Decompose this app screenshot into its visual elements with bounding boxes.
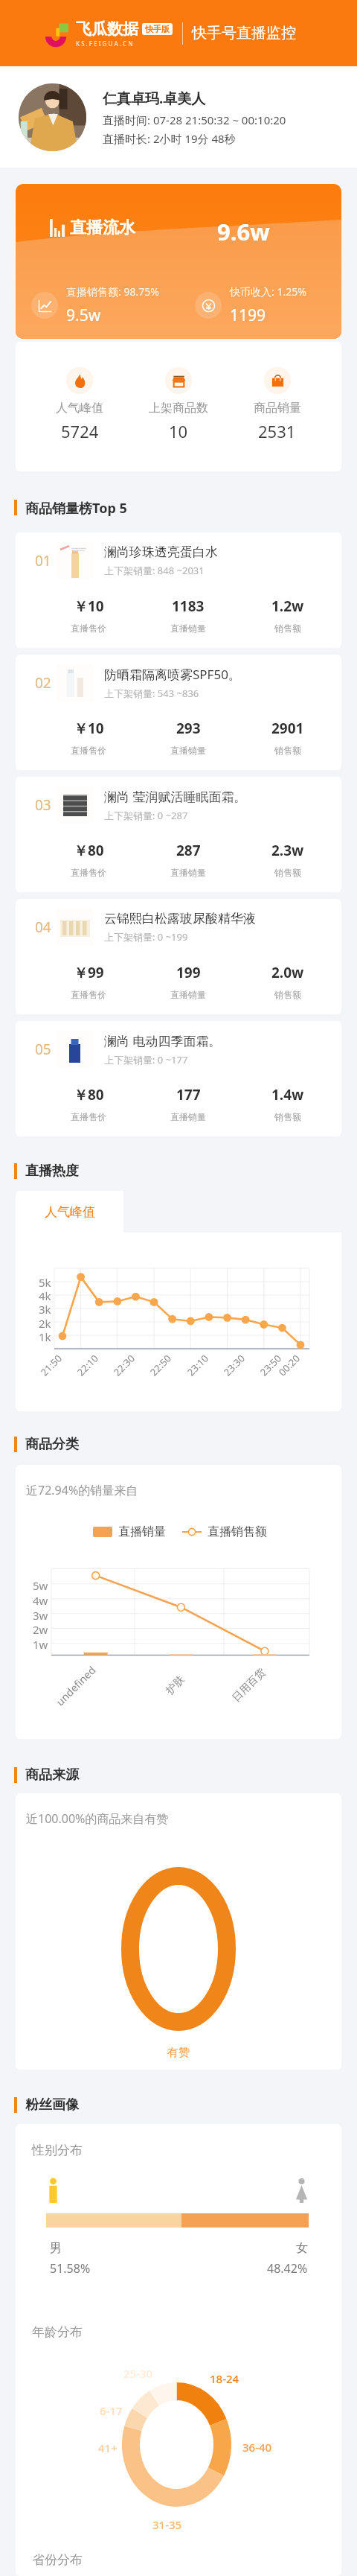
staticText: 直播售价 xyxy=(71,745,106,756)
staticText: 1183 xyxy=(172,597,205,616)
staticText: 3w xyxy=(33,1608,48,1623)
staticText: 177 xyxy=(176,1085,201,1104)
staticText: ￥80 xyxy=(74,1085,104,1104)
staticText: 05 xyxy=(35,1040,51,1059)
staticText: 5w xyxy=(33,1578,48,1593)
staticText: 1199 xyxy=(230,305,266,326)
staticText: undefined xyxy=(53,1663,99,1709)
staticText: 直播流水 xyxy=(70,217,135,238)
staticText: 直播销量 xyxy=(170,623,206,634)
staticText: K S . F E I G U A . C N xyxy=(76,39,133,48)
staticText: 22:30 xyxy=(111,1351,138,1379)
staticText: 36-40 xyxy=(242,2440,272,2455)
staticText: 上下架销量: 0 ~177 xyxy=(104,1053,188,1066)
staticText: 人气峰值 xyxy=(45,1204,95,1220)
staticText: 商品销量 xyxy=(254,401,301,416)
staticText: 性别分布 xyxy=(32,2143,83,2158)
staticText: 5k xyxy=(39,1275,51,1290)
staticText: 199 xyxy=(176,963,201,982)
staticText: 04 xyxy=(35,917,51,937)
staticText: 25-30 xyxy=(123,2366,153,2381)
staticText: ￥80 xyxy=(74,841,104,860)
staticText: 商品分类 xyxy=(25,1436,79,1453)
staticText: 粉丝画像 xyxy=(25,2096,79,2114)
staticText: 10 xyxy=(169,420,188,442)
staticText: 3k xyxy=(39,1302,51,1317)
staticText: 287 xyxy=(176,841,201,860)
staticText: 直播销量 xyxy=(118,1524,166,1539)
staticText: 02 xyxy=(35,673,51,693)
button[interactable]: 02 xyxy=(16,655,341,770)
staticText: 2901 xyxy=(271,719,304,738)
staticText: 商品销量榜Top 5 xyxy=(25,499,127,516)
staticText: 直播时间: 07-28 21:50:32 ~ 00:10:20 xyxy=(103,112,286,127)
staticText: 年龄分布 xyxy=(32,2324,83,2340)
button[interactable]: 05 xyxy=(16,1021,341,1136)
staticText: 销售额 xyxy=(274,989,301,1000)
staticText: 销售额 xyxy=(274,1111,301,1122)
staticText: 51.58% xyxy=(50,2260,91,2277)
staticText: 飞瓜数据 xyxy=(76,19,138,39)
staticText: 4k xyxy=(39,1288,51,1303)
staticText: 1.2w xyxy=(271,597,304,616)
staticText: 41+ xyxy=(98,2440,118,2455)
staticText: 上下架销量: 0 ~199 xyxy=(104,930,188,944)
staticText: 男 xyxy=(50,2241,62,2256)
staticText: 1w xyxy=(33,1637,48,1652)
staticText: 销售额 xyxy=(274,745,301,756)
staticText: 18-24 xyxy=(210,2371,239,2386)
staticText: 直播销量 xyxy=(170,989,206,1000)
button[interactable]: 人气峰值 xyxy=(16,1191,123,1233)
staticText: 2k xyxy=(39,1316,51,1331)
staticText: 48.42% xyxy=(267,2260,308,2277)
staticText: 03 xyxy=(35,795,51,815)
staticText: 直播售价 xyxy=(71,1111,106,1122)
staticText: 上下架销量: 848 ~2031 xyxy=(104,564,205,577)
staticText: 澜尚珍珠透亮蛋白水 xyxy=(104,544,218,560)
staticText: 22:50 xyxy=(147,1351,174,1379)
staticText: 直播销量 xyxy=(170,1111,206,1122)
staticText: 直播销量 xyxy=(170,745,206,756)
staticText: ￥10 xyxy=(74,719,104,738)
staticText: 云锦熙白松露玻尿酸精华液 xyxy=(104,911,256,926)
staticText: 销售额 xyxy=(274,623,301,634)
staticText: 1k xyxy=(39,1329,51,1344)
staticText: 直播售价 xyxy=(71,989,106,1000)
staticText: 直播销售额: 98.75% xyxy=(66,284,159,299)
staticText: 2.3w xyxy=(271,841,304,860)
staticText: 1.4w xyxy=(271,1085,304,1104)
staticText: 上下架销量: 0 ~287 xyxy=(104,809,188,822)
staticText: 仁真卓玛.卓美人 xyxy=(103,89,206,108)
staticText: ￥10 xyxy=(74,597,104,616)
staticText: 护肤 xyxy=(163,1673,188,1697)
staticText: 23:50 xyxy=(257,1351,284,1379)
staticText: 直播售价 xyxy=(71,623,106,634)
staticText: 21:50 xyxy=(38,1351,65,1379)
button[interactable]: 01 xyxy=(16,532,341,648)
staticText: 澜尚 莹润赋活睡眠面霜。 xyxy=(104,788,247,805)
staticText: 2.0w xyxy=(271,963,304,982)
staticText: 直播热度 xyxy=(25,1163,79,1180)
staticText: 澜尚 电动四季面霜。 xyxy=(104,1032,222,1049)
staticText: 销售额 xyxy=(274,867,301,878)
staticText: 01 xyxy=(35,551,51,570)
staticText: 31-35 xyxy=(152,2517,182,2532)
staticText: 快币收入: 1.25% xyxy=(230,284,306,299)
staticText: 近100.00%的商品来自有赞 xyxy=(26,1810,169,1827)
staticText: 293 xyxy=(176,719,201,738)
staticText: 商品来源 xyxy=(25,1766,79,1784)
staticText: 2531 xyxy=(258,420,296,442)
staticText: 女 xyxy=(296,2241,308,2256)
staticText: 直播售价 xyxy=(71,867,106,878)
staticText: 2w xyxy=(33,1622,48,1637)
staticText: 直播销量 xyxy=(170,867,206,878)
button[interactable]: 03 xyxy=(16,777,341,892)
staticText: 人气峰值 xyxy=(56,401,103,416)
staticText: 快手版 xyxy=(145,24,170,34)
staticText: 9.5w xyxy=(66,305,101,326)
staticText: 近72.94%的销量来自 xyxy=(26,1482,138,1498)
staticText: 省份分布 xyxy=(32,2552,83,2568)
staticText: 4w xyxy=(33,1593,48,1608)
button[interactable]: 04 xyxy=(16,899,341,1014)
staticText: ￥99 xyxy=(74,963,104,982)
